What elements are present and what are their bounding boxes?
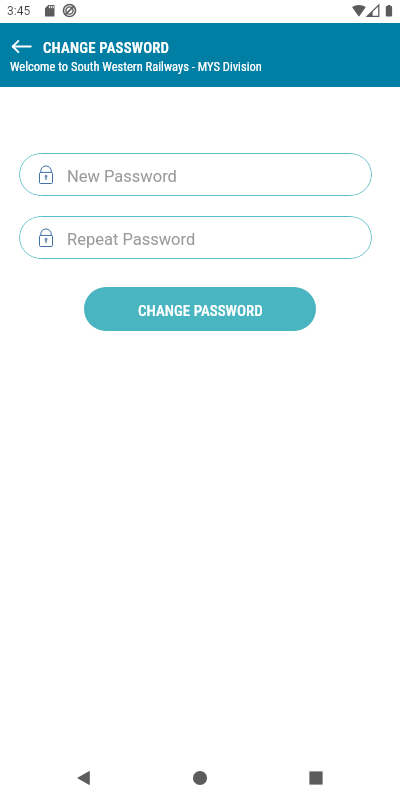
staticText: New Password [67, 167, 177, 186]
button[interactable]: CHANGE PASSWORD [84, 287, 316, 331]
button[interactable]: Recent apps [288, 756, 344, 800]
staticText: 3:45 [7, 4, 31, 18]
button[interactable]: Back [10, 36, 32, 58]
staticText: CHANGE PASSWORD [43, 39, 170, 56]
button[interactable]: Home [172, 756, 228, 800]
staticText: Repeat Password [67, 230, 196, 249]
button[interactable]: New Password [19, 153, 372, 196]
staticText: Welcome to South Western Railways - MYS … [10, 59, 262, 74]
button[interactable]: Repeat Password [19, 216, 372, 259]
staticText: CHANGE PASSWORD [138, 302, 263, 320]
button[interactable]: Back [56, 756, 112, 800]
